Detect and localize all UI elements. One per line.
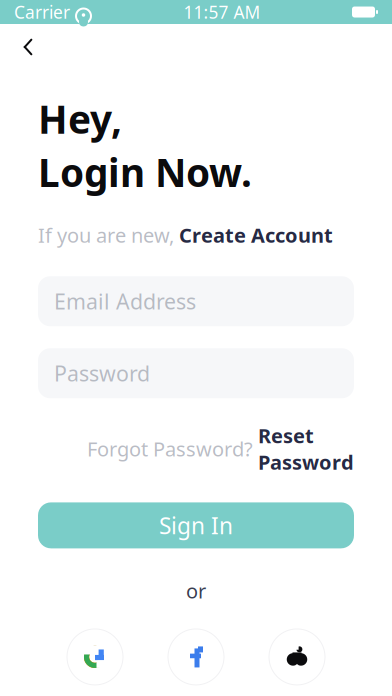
staticText: Create Account — [179, 222, 333, 248]
staticText: Login Now. — [38, 146, 252, 198]
staticText: Password — [54, 359, 150, 387]
button[interactable]: Sign in with Apple — [269, 629, 325, 685]
button[interactable]: Sign In — [38, 502, 354, 548]
staticText: Forgot Password? — [87, 435, 258, 462]
button[interactable]: Password — [38, 348, 354, 398]
staticText: Email Address — [54, 287, 196, 315]
staticText: Sign In — [159, 510, 233, 540]
staticText: Reset Password — [258, 422, 354, 475]
button[interactable]: Reset Password — [258, 422, 354, 475]
button[interactable]: Back — [6, 25, 50, 69]
staticText: or — [186, 577, 206, 604]
button[interactable]: Sign in with Google — [67, 629, 123, 685]
button[interactable]: Email Address — [38, 276, 354, 326]
button[interactable]: Sign in with Facebook — [168, 629, 224, 685]
staticText: Carrier — [14, 0, 70, 23]
staticText: If you are new, — [38, 222, 179, 248]
button[interactable]: Create Account — [179, 222, 333, 248]
staticText: Hey, — [38, 93, 122, 144]
staticText: 11:57 AM — [183, 0, 260, 23]
